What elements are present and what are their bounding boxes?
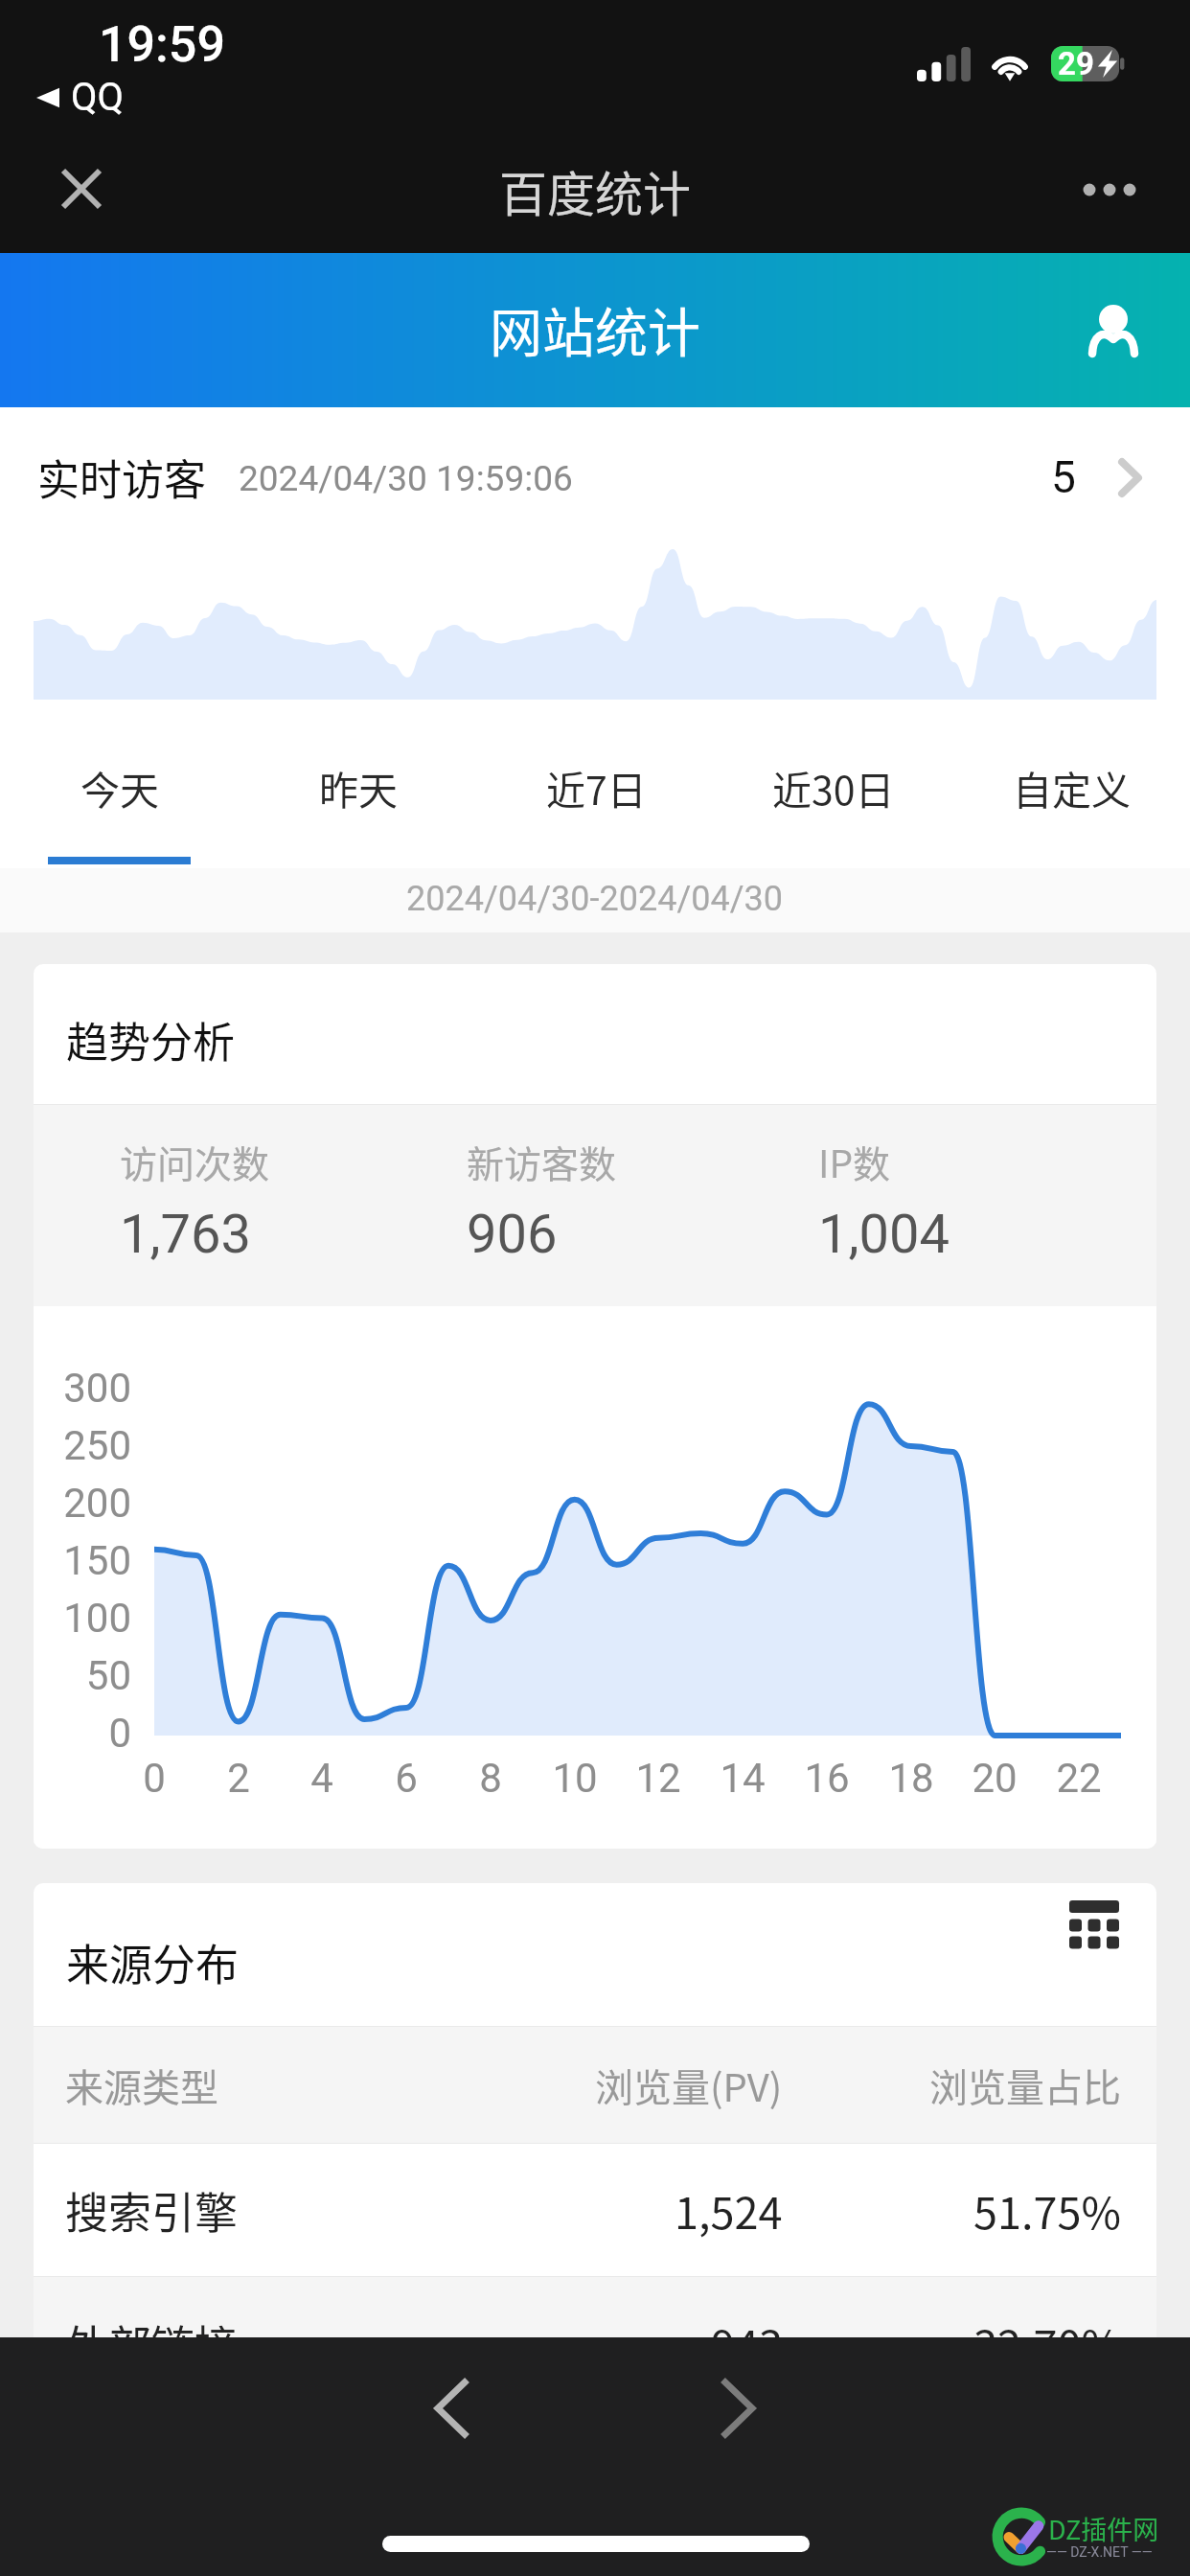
staticText: 外部链接 [65,2312,239,2375]
staticText: QQ [71,75,125,120]
staticText: 来源类型 [65,2058,218,2113]
staticText: 51.75% [973,2179,1121,2242]
button[interactable]: More options [1073,171,1144,209]
staticText: 14 [704,1755,781,1802]
staticText: 250 [40,1422,131,1469]
staticText: 4 [284,1755,360,1802]
staticText: 18 [873,1755,950,1802]
button[interactable]: Account [1075,294,1152,371]
button[interactable]: 自定义 [952,700,1190,868]
staticText: 2024/04/30-2024/04/30 [406,879,784,919]
button[interactable]: Forward [687,2356,790,2459]
staticText: 0 [40,1710,131,1757]
staticText: 昨天 [319,759,398,816]
staticText: —— DZ-X.NET —— [1046,2544,1153,2560]
staticText: 12 [620,1755,697,1802]
staticText: 1,763 [120,1203,251,1266]
staticText: 906 [467,1203,558,1266]
button[interactable]: 搜索引擎 [34,2144,1156,2276]
staticText: 6 [368,1755,445,1802]
staticText: 2 [200,1755,277,1802]
staticText: 300 [40,1365,131,1412]
staticText: 今天 [80,759,159,816]
staticText: 网站统计 [490,290,701,367]
staticText: 29 [1058,45,1094,80]
button[interactable]: Back [400,2356,503,2459]
staticText: 自定义 [1013,759,1131,816]
staticText: 搜索引擎 [65,2179,239,2242]
staticText: 来源分布 [66,1931,240,1993]
button[interactable]: Grid view [1069,1900,1119,1950]
button[interactable]: 昨天 [239,700,477,868]
staticText: 16 [789,1755,865,1802]
staticText: 趋势分析 [66,1009,235,1070]
staticText: 5 [1051,451,1076,503]
staticText: 150 [40,1537,131,1584]
staticText: 近7日 [546,759,647,816]
staticText: 8 [452,1755,529,1802]
staticText: 2024/04/30 19:59:06 [239,458,573,499]
button[interactable]: 近30日 [715,700,952,868]
staticText: 1,524 [675,2179,783,2242]
staticText: DZ插件网 [1048,2510,1159,2547]
staticText: 浏览量占比 [929,2058,1121,2113]
staticText: 实时访客 [37,447,206,508]
staticText: 943 [711,2312,783,2375]
staticText: 浏览量(PV) [595,2058,783,2113]
staticText: 20 [956,1755,1033,1802]
staticText: 19:59 [99,15,225,74]
staticText: 1,004 [818,1203,950,1266]
button[interactable]: 今天 [0,700,239,868]
button[interactable]: Close [39,147,124,231]
staticText: 100 [40,1595,131,1642]
staticText: 新访客数 [467,1135,617,1188]
staticText: 200 [40,1480,131,1527]
staticText: 10 [537,1755,613,1802]
staticText: 32.70% [973,2312,1121,2375]
staticText: 0 [116,1755,193,1802]
staticText: 50 [40,1652,131,1699]
staticText: 近30日 [772,759,895,816]
staticText: 百度统计 [499,156,691,225]
staticText: IP数 [818,1135,891,1188]
staticText: 22 [1041,1755,1117,1802]
button[interactable]: 外部链接 [34,2277,1156,2409]
button[interactable]: 近7日 [477,700,715,868]
staticText: 访问次数 [120,1135,270,1188]
button[interactable]: 实时访客 [0,407,1190,547]
